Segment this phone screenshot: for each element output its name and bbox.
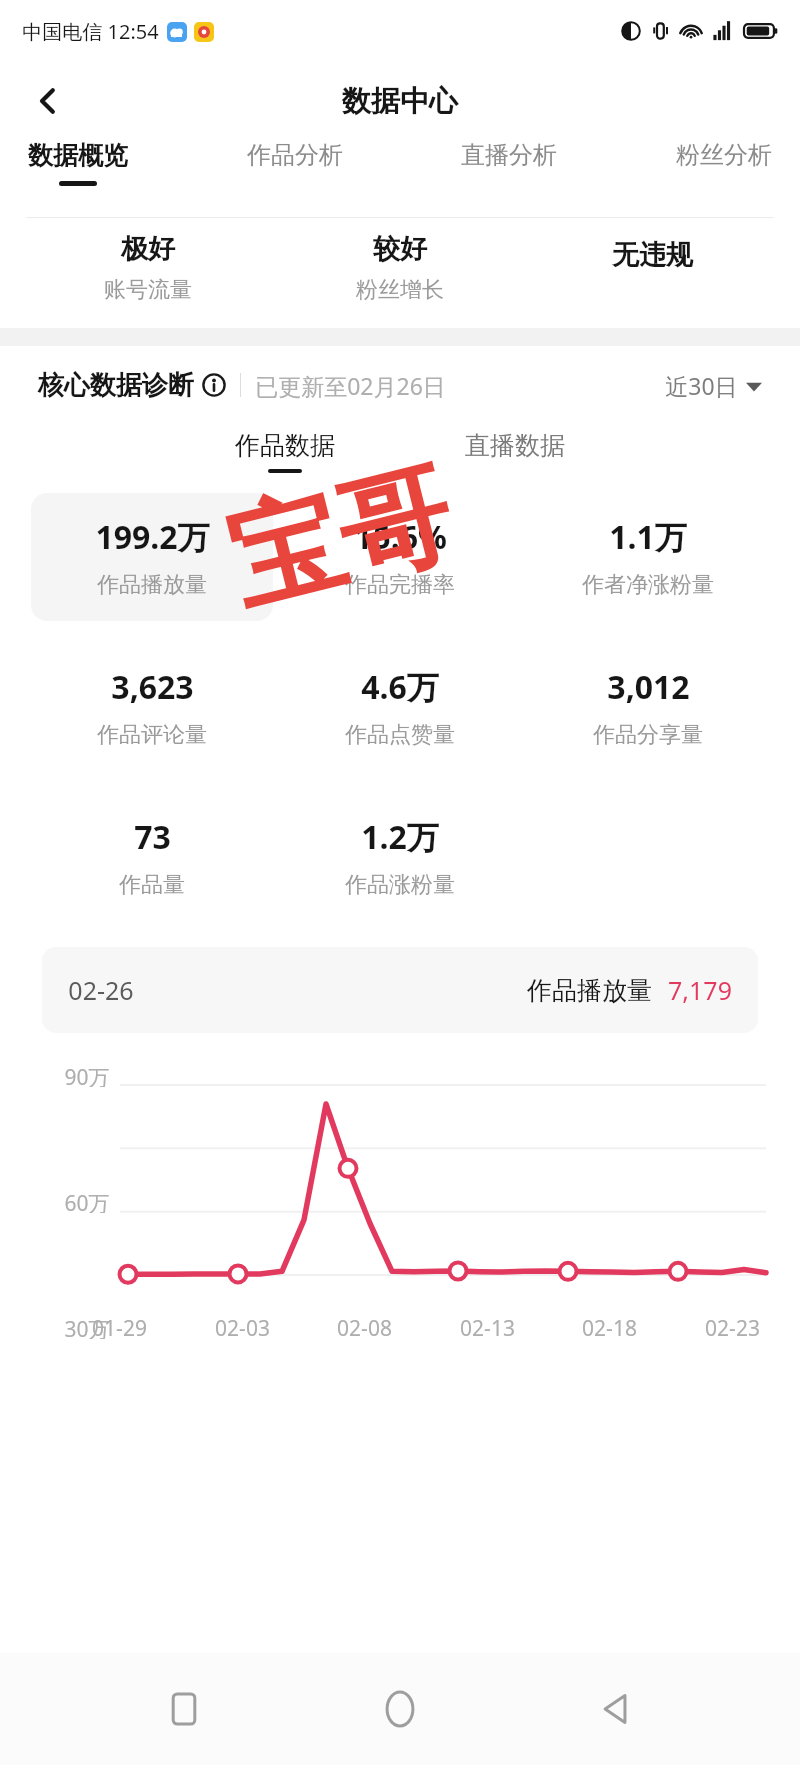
staticText: 核心数据诊断 (38, 369, 194, 402)
staticText: 作品涨粉量 (345, 871, 455, 899)
staticText: 02-08 (337, 1314, 392, 1343)
staticText: 作品量 (119, 871, 185, 899)
button[interactable]: 02-26 (42, 947, 758, 1033)
staticText: 02-03 (215, 1314, 270, 1343)
staticText: 1.1万 (609, 515, 687, 559)
staticText: 数据概览 (28, 140, 128, 171)
staticText: 02-18 (582, 1314, 637, 1343)
staticText: 02-23 (705, 1314, 760, 1343)
staticText: 1.2万 (361, 815, 439, 859)
button[interactable]: 4.6万 (279, 643, 521, 771)
button[interactable]: 73 (31, 793, 273, 921)
staticText: 7,179 (668, 973, 732, 1007)
staticText: 02-26 (68, 973, 134, 1007)
staticText: 作品评论量 (97, 721, 207, 749)
button[interactable]: Home (368, 1677, 432, 1741)
button[interactable]: 3,012 (527, 643, 769, 771)
staticText: 199.2万 (95, 515, 210, 559)
staticText: 01-29 (92, 1314, 147, 1343)
staticText: 作品分析 (247, 140, 343, 170)
staticText: 已更新至02月26日 (255, 370, 446, 401)
button[interactable]: 粉丝分析 (674, 140, 774, 180)
staticText: 73 (134, 815, 171, 859)
button[interactable]: 极好 (22, 232, 274, 304)
button[interactable]: 直播分析 (459, 140, 559, 180)
staticText: 直播数据 (465, 430, 565, 461)
staticText: 直播分析 (461, 140, 557, 170)
button[interactable]: Info (202, 373, 226, 397)
staticText: 作品数据 (235, 430, 335, 461)
staticText: 无违规 (612, 238, 693, 272)
button[interactable]: 15.6% (279, 493, 521, 621)
button[interactable]: 199.2万 (31, 493, 273, 621)
staticText: 作品播放量 (97, 571, 207, 599)
staticText: 粉丝增长 (356, 276, 444, 304)
staticText: 粉丝分析 (676, 140, 772, 170)
staticText: 90万 (64, 1063, 110, 1087)
staticText: 宝哥 (214, 443, 466, 634)
staticText: 60万 (64, 1189, 110, 1213)
button[interactable]: 较好 (274, 232, 526, 304)
button[interactable]: 数据概览 (26, 140, 130, 186)
staticText: 账号流量 (104, 276, 192, 304)
staticText: 30万 (64, 1315, 110, 1339)
staticText: 近30日 (665, 370, 738, 401)
staticText: 极好 (121, 232, 175, 266)
button[interactable]: 1.2万 (279, 793, 521, 921)
staticText: 中国电信 12:54 (22, 18, 159, 45)
staticText: 较好 (373, 232, 427, 266)
staticText: 作品播放量 (527, 975, 652, 1006)
staticText: 3,623 (111, 665, 194, 709)
button[interactable]: 作品分析 (245, 140, 345, 180)
staticText: 02-13 (460, 1314, 515, 1343)
staticText: 作者净涨粉量 (582, 571, 714, 599)
staticText: 数据中心 (342, 83, 458, 120)
staticText: 作品分享量 (593, 721, 703, 749)
button[interactable]: 作品数据 (235, 430, 335, 473)
button[interactable]: Back (20, 73, 76, 129)
staticText: 作品完播率 (345, 571, 455, 599)
button[interactable]: 无违规 (606, 232, 699, 278)
button[interactable]: 直播数据 (465, 430, 565, 473)
button[interactable]: Back (584, 1677, 648, 1741)
staticText: 4.6万 (361, 665, 439, 709)
staticText: 作品点赞量 (345, 721, 455, 749)
button[interactable]: 近30日 (665, 370, 762, 401)
button[interactable]: 1.1万 (527, 493, 769, 621)
button[interactable]: Recent apps (152, 1677, 216, 1741)
staticText: 3,012 (607, 665, 690, 709)
staticText: 15.6% (354, 515, 447, 559)
button[interactable]: 3,623 (31, 643, 273, 771)
